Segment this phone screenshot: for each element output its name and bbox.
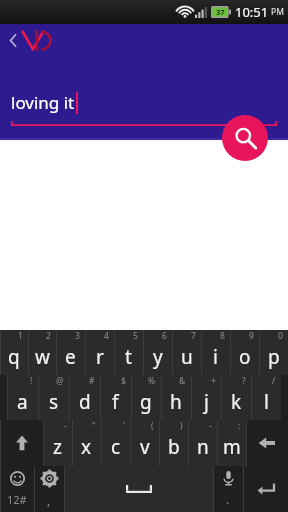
button[interactable]: # [69, 375, 100, 420]
staticText: 3 [75, 330, 80, 342]
button[interactable]: Back [5, 28, 21, 52]
button[interactable]: 2 [28, 330, 56, 375]
button[interactable]: , [34, 466, 64, 512]
staticText: 9 [249, 330, 254, 342]
staticText: - [64, 420, 67, 432]
button[interactable]: Shift [0, 420, 43, 466]
button[interactable]: . [213, 466, 243, 512]
staticText: : [238, 420, 241, 432]
staticText: e [65, 344, 76, 370]
button[interactable]: 8 [201, 330, 230, 375]
staticText: & [179, 375, 186, 387]
staticText: 7 [191, 330, 196, 342]
button[interactable]: 7 [172, 330, 201, 375]
staticText: 8 [220, 330, 225, 342]
staticText: y [153, 344, 163, 370]
button[interactable]: Search [222, 115, 268, 161]
staticText: $ [121, 375, 126, 387]
staticText: j [204, 389, 209, 415]
button[interactable]: 4 [85, 330, 114, 375]
staticText: q [8, 344, 20, 370]
staticText: 1 [18, 330, 23, 342]
staticText: 2 [46, 330, 51, 342]
staticText: - [209, 420, 212, 432]
staticText: f [112, 389, 119, 415]
staticText: k [231, 389, 242, 415]
staticText: 10:51 [235, 3, 269, 21]
staticText: z [53, 434, 62, 460]
staticText: v [140, 434, 150, 460]
button[interactable]: - [43, 420, 72, 466]
button[interactable]: ? [221, 375, 251, 420]
button[interactable]: loving it [11, 91, 277, 126]
staticText: ) [180, 420, 183, 432]
staticText: o [239, 344, 251, 370]
button[interactable]: & [161, 375, 191, 420]
staticText: @ [56, 375, 64, 387]
staticText: w [35, 344, 50, 370]
staticText: , [47, 492, 51, 508]
staticText: m [223, 434, 241, 460]
button[interactable]: ( [130, 420, 159, 466]
staticText: / [272, 375, 276, 387]
staticText: c [111, 434, 121, 460]
button[interactable]: / [251, 375, 281, 420]
button[interactable]: 5 [114, 330, 143, 375]
staticText: % [148, 375, 156, 387]
button[interactable]: Enter [243, 466, 288, 512]
button[interactable]: ' [101, 420, 130, 466]
staticText: PM [271, 6, 284, 18]
button[interactable]: ! [7, 375, 38, 420]
staticText: # [89, 375, 95, 387]
staticText: ( [151, 420, 154, 432]
button[interactable]: : [217, 420, 246, 466]
button[interactable]: 9 [230, 330, 259, 375]
button[interactable]: 12# [0, 466, 34, 512]
staticText: + [211, 375, 216, 387]
button[interactable]: Logo [21, 28, 57, 52]
staticText: . [226, 491, 230, 507]
button[interactable]: Space [64, 466, 213, 512]
staticText: s [49, 389, 59, 415]
staticText: t [125, 344, 132, 370]
staticText: ? [242, 375, 246, 387]
staticText: 6 [162, 330, 167, 342]
staticText: ! [30, 375, 33, 387]
button[interactable]: % [131, 375, 161, 420]
staticText: h [170, 389, 182, 415]
staticText: 0 [278, 330, 283, 342]
staticText: ' [123, 420, 125, 432]
staticText: p [268, 344, 280, 370]
staticText: g [140, 389, 152, 415]
staticText: 12# [7, 492, 27, 507]
staticText: l [264, 389, 269, 415]
button[interactable]: + [191, 375, 221, 420]
button[interactable]: 6 [143, 330, 172, 375]
staticText: r [96, 344, 104, 370]
button[interactable]: " [72, 420, 101, 466]
staticText: x [81, 434, 92, 460]
staticText: loving it [11, 91, 75, 114]
staticText: 5 [133, 330, 138, 342]
button[interactable]: ) [159, 420, 188, 466]
button[interactable]: - [188, 420, 217, 466]
staticText: a [17, 389, 28, 415]
button[interactable]: 3 [56, 330, 85, 375]
button[interactable]: 1 [0, 330, 28, 375]
button[interactable]: 0 [259, 330, 288, 375]
staticText: u [181, 344, 193, 370]
staticText: n [197, 434, 209, 460]
button[interactable]: @ [38, 375, 69, 420]
staticText: b [168, 434, 180, 460]
staticText: i [213, 344, 218, 370]
staticText: " [92, 420, 96, 432]
staticText: 37 [216, 7, 225, 17]
staticText: d [79, 389, 91, 415]
staticText: 4 [104, 330, 109, 342]
button[interactable]: Backspace [246, 420, 288, 466]
button[interactable]: $ [100, 375, 131, 420]
